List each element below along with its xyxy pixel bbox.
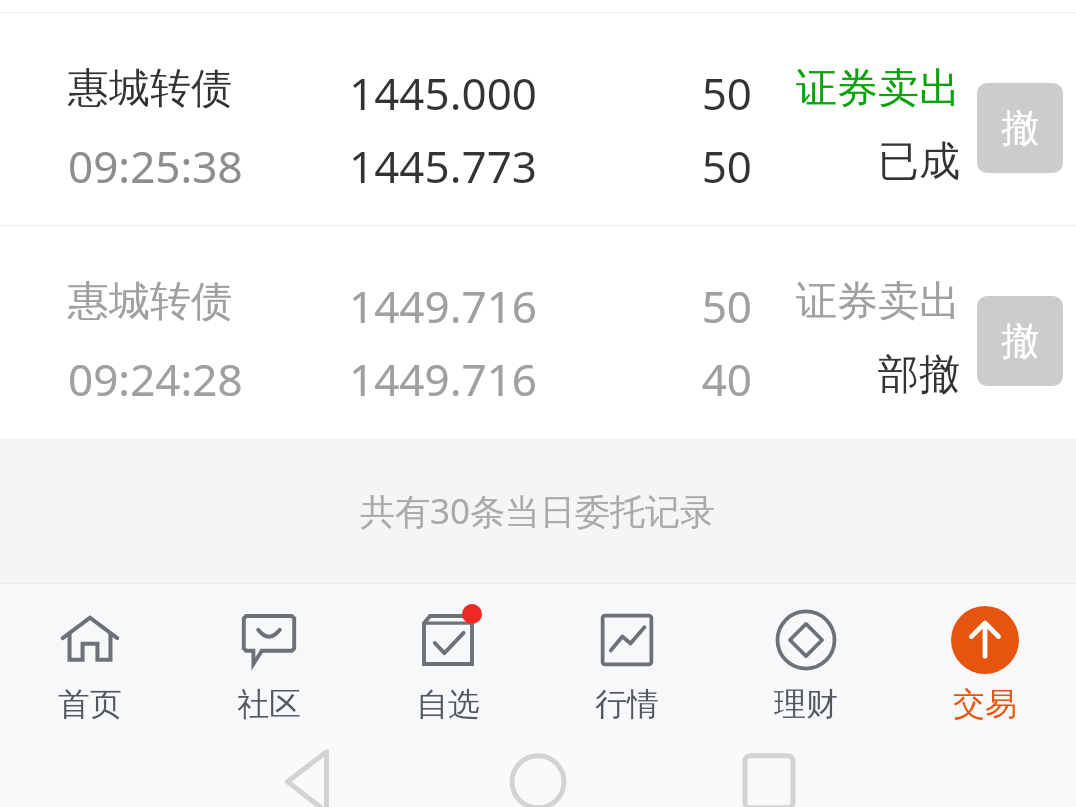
staticText: 1445.773 [295, 136, 537, 196]
staticText: 50 [590, 276, 752, 336]
button[interactable]: 惠城转债 [0, 226, 1076, 438]
staticText: 50 [590, 63, 752, 123]
button[interactable]: 撤 [977, 83, 1063, 173]
staticText: 惠城转债 [68, 276, 232, 328]
staticText: 证券卖出 [778, 276, 960, 328]
staticText: 惠城转债 [68, 63, 232, 115]
staticText: 行情 [595, 684, 659, 724]
staticText: 首页 [58, 684, 122, 724]
button[interactable]: 社区 [179, 584, 358, 744]
button[interactable]: 行情 [537, 584, 716, 744]
staticText: 社区 [237, 684, 301, 724]
button[interactable]: 撤 [977, 296, 1063, 386]
staticText: 交易 [953, 684, 1017, 724]
staticText: 自选 [416, 684, 480, 724]
staticText: 09:25:38 [68, 136, 243, 196]
staticText: 50 [590, 136, 752, 196]
button[interactable]: 交易 [895, 584, 1074, 744]
staticText: 40 [590, 349, 752, 409]
button[interactable]: 首页 [0, 584, 179, 744]
staticText: 撤 [1001, 104, 1039, 152]
staticText: 1445.000 [295, 63, 537, 123]
staticText: 理财 [774, 684, 838, 724]
staticText: 1449.716 [295, 276, 537, 336]
staticText: 已成 [778, 136, 960, 188]
staticText: 证券卖出 [778, 63, 960, 115]
staticText: 共有30条当日委托记录 [360, 487, 716, 535]
button[interactable]: 自选 [358, 584, 537, 744]
button[interactable]: 理财 [716, 584, 895, 744]
staticText: 09:24:28 [68, 349, 243, 409]
staticText: 1449.716 [295, 349, 537, 409]
staticText: 撤 [1001, 317, 1039, 365]
button[interactable]: 惠城转债 [0, 13, 1076, 225]
staticText: 部撤 [778, 349, 960, 401]
